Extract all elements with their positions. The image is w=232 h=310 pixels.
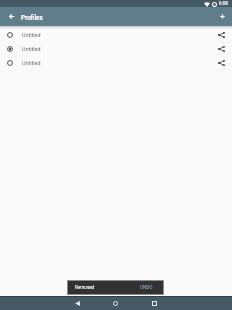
- staticText: Untitled: [22, 60, 41, 66]
- button[interactable]: Back: [69, 296, 85, 310]
- staticText: Removed: [75, 285, 95, 290]
- button[interactable]: UNDO: [140, 281, 153, 294]
- button[interactable]: Untitled: [0, 28, 232, 42]
- button[interactable]: Untitled: [0, 42, 232, 56]
- button[interactable]: Recent apps: [146, 296, 162, 310]
- button[interactable]: Home: [107, 296, 123, 310]
- button[interactable]: Untitled: [0, 56, 232, 70]
- staticText: UNDO: [140, 285, 153, 290]
- staticText: 6:00: [219, 1, 229, 7]
- button[interactable]: Navigate up: [4, 9, 19, 24]
- staticText: Untitled: [22, 32, 41, 38]
- button[interactable]: Share: [210, 56, 232, 70]
- button[interactable]: Share: [210, 42, 232, 56]
- button[interactable]: Add profile: [215, 9, 230, 24]
- staticText: Profiles: [21, 14, 43, 21]
- staticText: Untitled: [22, 46, 41, 52]
- button[interactable]: Share: [210, 28, 232, 42]
